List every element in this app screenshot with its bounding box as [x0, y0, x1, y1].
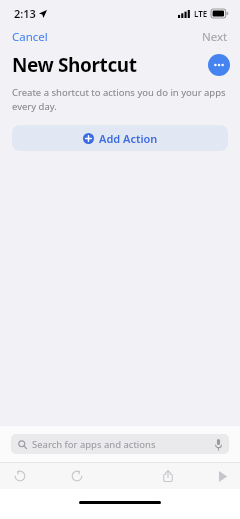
staticText: Create a shortcut to actions you do in y… [12, 86, 226, 113]
staticText: New Shortcut [12, 52, 137, 78]
staticText: Next [202, 29, 228, 45]
other: Voice search [215, 439, 222, 450]
button[interactable]: Run shortcut [212, 466, 232, 486]
button[interactable]: Next [190, 26, 240, 48]
staticText: Cancel [12, 29, 48, 45]
button[interactable]: More options [208, 54, 230, 76]
button[interactable]: Search for apps and actions [11, 434, 229, 454]
staticText: Search for apps and actions [32, 438, 156, 451]
button[interactable]: Share [158, 466, 178, 486]
staticText: 2:13 [14, 6, 36, 21]
button[interactable]: Undo [10, 466, 30, 486]
staticText: Add Action [99, 131, 158, 146]
button[interactable]: Cancel [0, 26, 60, 48]
button[interactable]: Redo [67, 466, 87, 486]
staticText: LTE [194, 8, 208, 19]
button[interactable]: Add Action [12, 125, 228, 151]
